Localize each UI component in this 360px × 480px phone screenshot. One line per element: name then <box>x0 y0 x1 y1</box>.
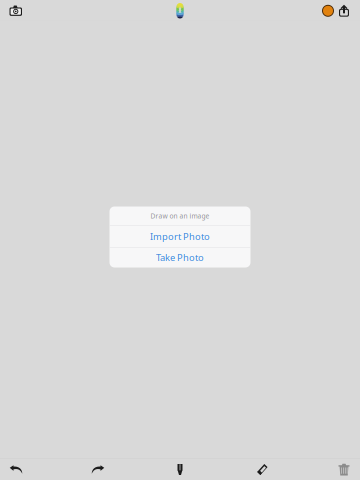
button[interactable]: Camera <box>0 0 31 20</box>
button[interactable]: Import Photo <box>109 226 250 247</box>
button[interactable]: Pen <box>164 459 196 480</box>
staticText: Take Photo <box>156 251 204 264</box>
button[interactable]: Delete <box>328 459 360 480</box>
button[interactable]: Attachments <box>169 0 190 20</box>
button[interactable]: Colour <box>317 0 339 20</box>
button[interactable]: Undo <box>0 459 32 480</box>
button[interactable]: Eraser <box>246 459 278 480</box>
button[interactable]: Take Photo <box>109 247 250 267</box>
staticText: Draw on an image <box>150 212 209 220</box>
button[interactable]: Redo <box>82 459 114 480</box>
staticText: Import Photo <box>150 230 210 243</box>
button[interactable]: Share <box>339 0 360 20</box>
